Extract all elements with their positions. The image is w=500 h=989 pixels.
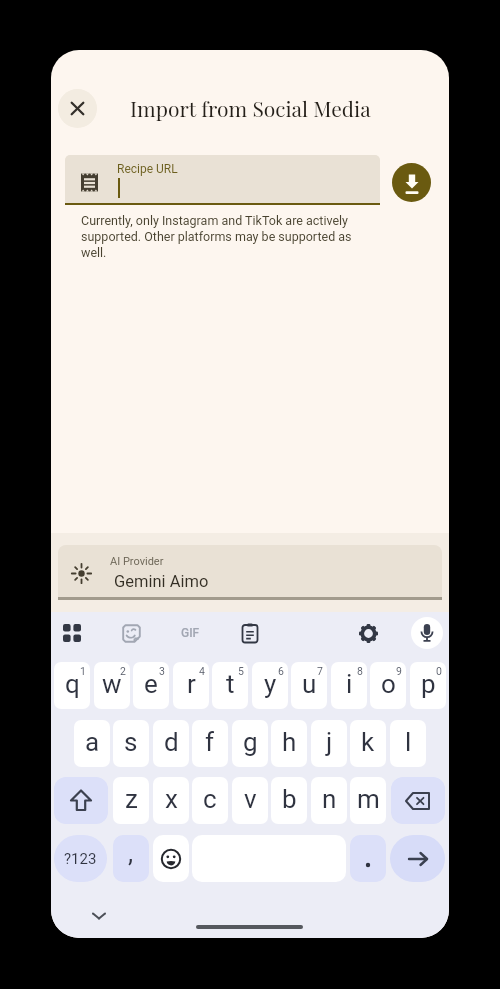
staticText: x <box>165 784 178 814</box>
button[interactable]: f <box>192 720 228 767</box>
staticText: 2 <box>120 665 126 677</box>
staticText: AI Provider <box>110 555 164 568</box>
staticText: h <box>282 727 297 757</box>
staticText: 1 <box>80 665 86 677</box>
staticText: o <box>381 669 396 699</box>
button[interactable]: c <box>192 777 228 824</box>
staticText: u <box>302 669 317 699</box>
button[interactable] <box>63 624 81 642</box>
button[interactable] <box>153 835 189 882</box>
button[interactable]: d <box>153 720 189 767</box>
button[interactable] <box>89 907 109 925</box>
staticText: i <box>346 669 353 699</box>
staticText: f <box>205 727 215 757</box>
staticText: a <box>85 727 100 757</box>
button[interactable] <box>391 777 445 824</box>
staticText: Recipe URL <box>117 162 178 176</box>
button[interactable]: k <box>350 720 386 767</box>
button[interactable] <box>58 545 442 600</box>
staticText: t <box>226 669 235 699</box>
button[interactable]: y <box>252 662 288 709</box>
staticText: w <box>102 669 122 699</box>
staticText: m <box>357 784 380 814</box>
button[interactable] <box>54 777 108 824</box>
button[interactable]: a <box>74 720 110 767</box>
staticText: 7 <box>317 665 323 677</box>
button[interactable] <box>65 155 380 205</box>
staticText: 5 <box>238 665 244 677</box>
button[interactable]: i <box>331 662 367 709</box>
button[interactable] <box>122 624 141 643</box>
staticText: 0 <box>436 665 442 677</box>
button[interactable]: b <box>271 777 307 824</box>
button[interactable]: n <box>311 777 347 824</box>
staticText: Gemini Aimo <box>114 572 209 591</box>
staticText: ?123 <box>64 850 97 868</box>
button[interactable]: w <box>94 662 130 709</box>
button[interactable]: t <box>212 662 248 709</box>
button[interactable]: q <box>54 662 90 709</box>
staticText: k <box>361 727 375 757</box>
staticText: c <box>203 784 217 814</box>
staticText: Currently, only Instagram and TikTok are… <box>81 213 352 260</box>
button[interactable]: g <box>232 720 268 767</box>
button[interactable]: m <box>350 777 386 824</box>
staticText: y <box>264 669 277 699</box>
button[interactable]: s <box>113 720 149 767</box>
button[interactable]: e <box>133 662 169 709</box>
button[interactable]: , <box>113 835 149 882</box>
staticText: 3 <box>159 665 165 677</box>
button[interactable] <box>390 835 445 882</box>
staticText: 9 <box>396 665 402 677</box>
button[interactable]: u <box>291 662 327 709</box>
staticText: 6 <box>278 665 284 677</box>
staticText: p <box>421 669 436 699</box>
button[interactable]: r <box>173 662 209 709</box>
button[interactable]: l <box>390 720 426 767</box>
button[interactable]: h <box>271 720 307 767</box>
button[interactable]: x <box>153 777 189 824</box>
button[interactable]: GIF <box>176 624 205 642</box>
button[interactable] <box>350 835 386 882</box>
staticText: Import from Social Media <box>130 94 371 122</box>
staticText: e <box>144 669 158 699</box>
staticText: g <box>243 727 258 757</box>
staticText: n <box>322 784 337 814</box>
button[interactable] <box>359 624 378 643</box>
staticText: 4 <box>199 665 205 677</box>
button[interactable]: j <box>311 720 347 767</box>
button[interactable] <box>392 163 431 202</box>
staticText: s <box>124 727 138 757</box>
staticText: r <box>187 669 196 699</box>
button[interactable] <box>58 89 97 128</box>
staticText: v <box>244 784 257 814</box>
button[interactable] <box>240 623 260 643</box>
button[interactable] <box>411 617 443 649</box>
staticText: z <box>125 784 138 814</box>
staticText: , <box>128 838 134 868</box>
button[interactable]: z <box>113 777 149 824</box>
staticText: GIF <box>181 626 200 640</box>
button[interactable]: o <box>370 662 406 709</box>
staticText: l <box>405 727 412 757</box>
button[interactable]: ?123 <box>54 835 107 882</box>
button[interactable]: p <box>410 662 446 709</box>
staticText: b <box>282 784 297 814</box>
staticText: d <box>164 727 179 757</box>
staticText: q <box>65 669 80 699</box>
staticText: 8 <box>357 665 363 677</box>
button[interactable]: v <box>232 777 268 824</box>
staticText: j <box>326 727 333 757</box>
